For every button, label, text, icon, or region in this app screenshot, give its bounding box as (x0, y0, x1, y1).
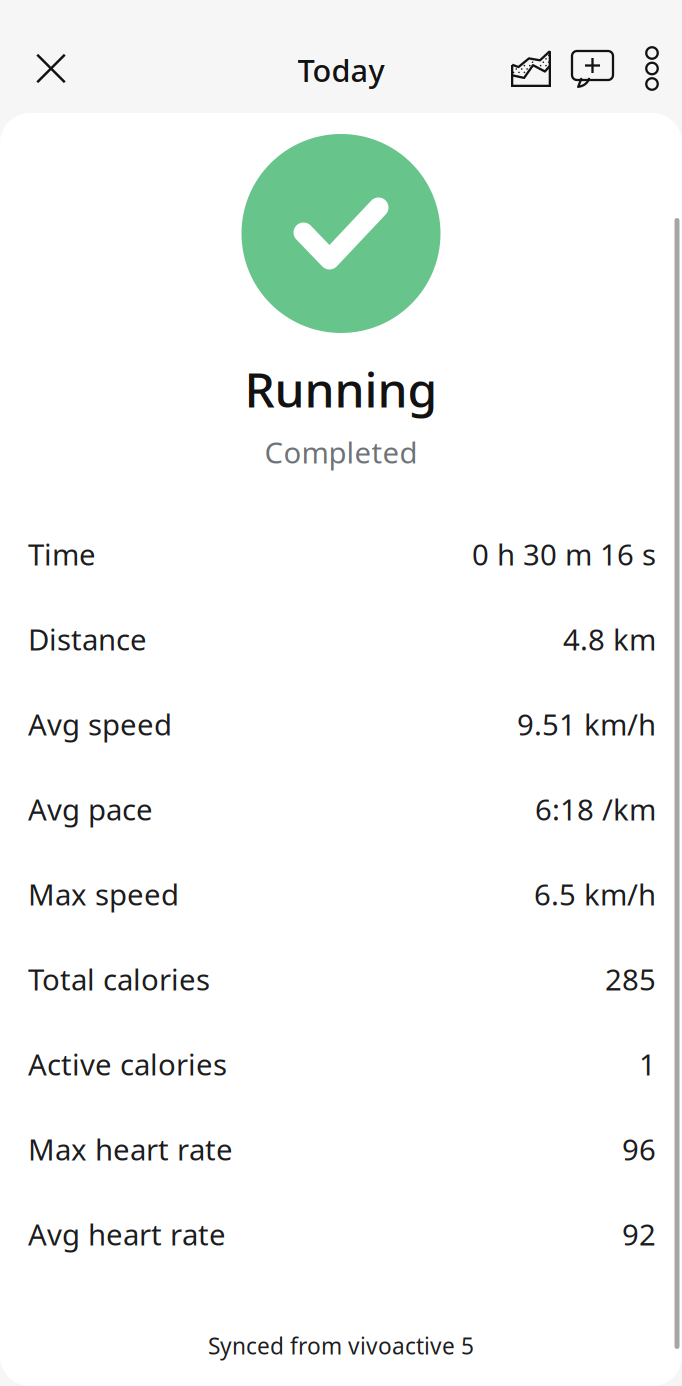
staticText: Synced from vivoactive 5 (208, 1331, 474, 1361)
button[interactable]: Close (15, 32, 87, 104)
button[interactable]: Total calories (0, 937, 682, 1022)
staticText: Total calories (28, 960, 210, 999)
button[interactable]: Distance (0, 597, 682, 682)
button[interactable]: Avg speed (0, 682, 682, 767)
staticText: 285 (605, 960, 656, 999)
staticText: Running (244, 357, 437, 421)
button[interactable]: Max speed (0, 852, 682, 937)
button[interactable]: Add note (563, 35, 621, 103)
staticText: 96 (622, 1130, 656, 1169)
button[interactable]: Avg heart rate (0, 1192, 682, 1277)
staticText: Avg heart rate (28, 1215, 226, 1254)
staticText: Today (297, 50, 384, 90)
staticText: Active calories (28, 1045, 227, 1084)
button[interactable]: Avg pace (0, 767, 682, 852)
staticText: Time (28, 535, 96, 574)
staticText: Max heart rate (28, 1130, 233, 1169)
staticText: 92 (622, 1215, 656, 1254)
button[interactable]: More options (629, 34, 675, 102)
button[interactable]: Time (0, 512, 682, 597)
staticText: 1 (639, 1045, 656, 1084)
button[interactable]: Active calories (0, 1022, 682, 1107)
staticText: 9.51 km/h (517, 705, 656, 744)
staticText: Max speed (28, 875, 179, 914)
staticText: Completed (264, 433, 417, 472)
staticText: 4.8 km (563, 620, 656, 659)
staticText: 6.5 km/h (534, 875, 656, 914)
button[interactable]: Charts (501, 34, 561, 102)
staticText: 6:18 /km (535, 790, 656, 829)
button[interactable]: Max heart rate (0, 1107, 682, 1192)
staticText: Distance (28, 620, 147, 659)
staticText: Avg pace (28, 790, 153, 829)
staticText: 0 h 30 m 16 s (472, 535, 656, 574)
staticText: Avg speed (28, 705, 172, 744)
